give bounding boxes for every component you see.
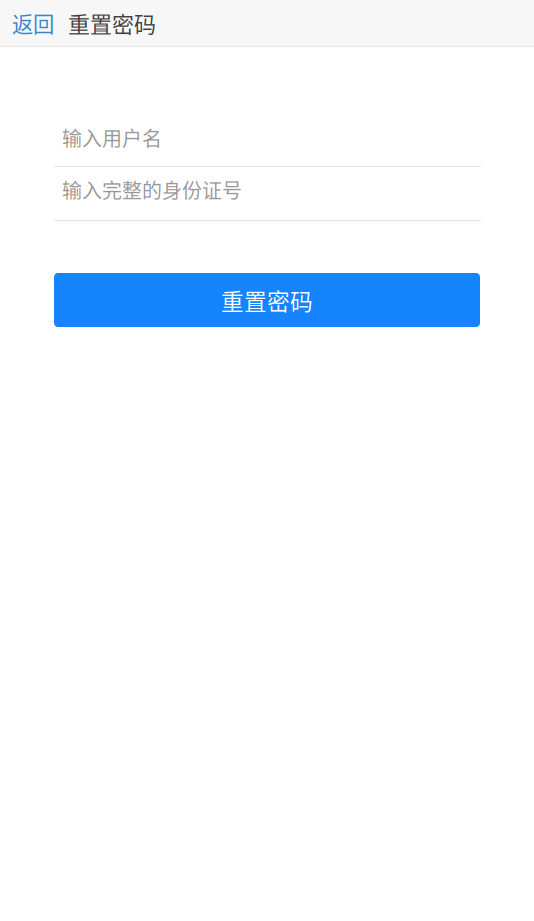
staticText: 重置密码 <box>221 284 313 316</box>
button[interactable]: 输入完整的身份证号 <box>54 175 481 221</box>
staticText: 返回 <box>12 8 54 38</box>
button[interactable]: 返回 <box>0 0 68 46</box>
staticText: 重置密码 <box>68 7 156 39</box>
button[interactable]: 重置密码 <box>54 273 480 327</box>
staticText: 输入完整的身份证号 <box>62 175 242 204</box>
staticText: 输入用户名 <box>62 123 162 152</box>
button[interactable]: 输入用户名 <box>54 123 481 167</box>
